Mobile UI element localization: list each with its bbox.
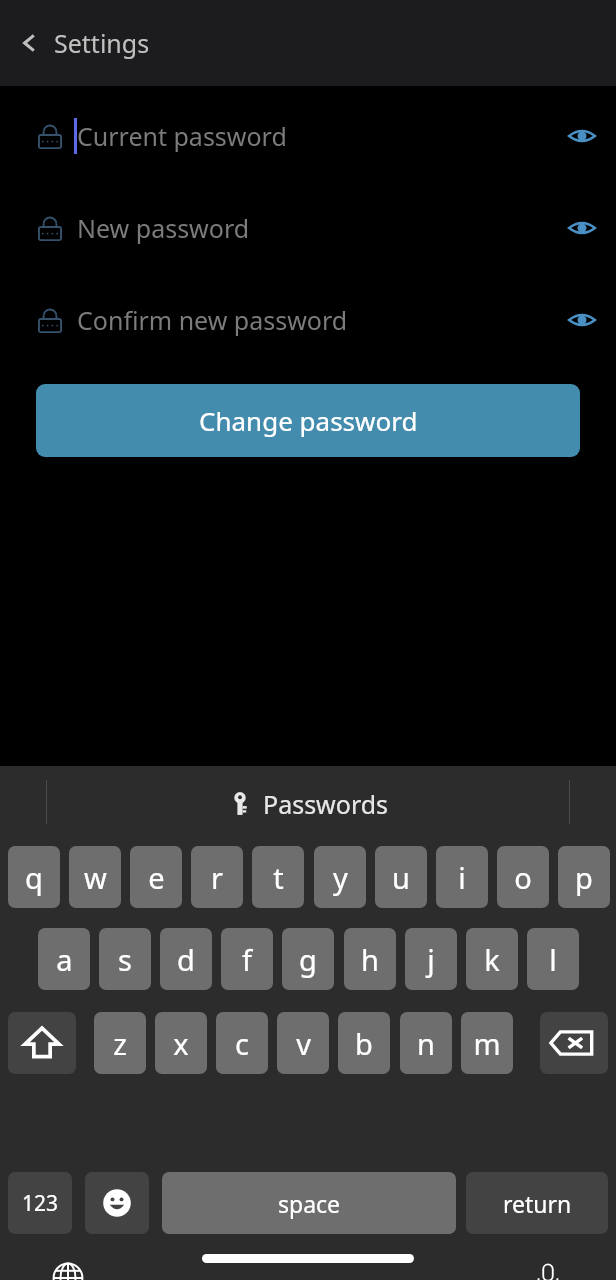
staticText: r xyxy=(211,858,223,897)
button[interactable]: j xyxy=(405,928,457,990)
staticText: c xyxy=(235,1024,249,1063)
staticText: Current password xyxy=(77,119,287,153)
button[interactable]: Show password xyxy=(558,296,606,344)
button[interactable]: a xyxy=(38,928,90,990)
button[interactable]: u xyxy=(375,846,427,908)
staticText: space xyxy=(278,1188,341,1219)
button[interactable]: Switch keyboard xyxy=(44,1254,92,1280)
button[interactable]: e xyxy=(130,846,182,908)
staticText: u xyxy=(392,858,410,897)
button[interactable]: Dictation xyxy=(524,1254,572,1280)
button[interactable]: Show password xyxy=(558,112,606,160)
button[interactable]: w xyxy=(69,846,121,908)
button[interactable]: h xyxy=(344,928,396,990)
staticText: w xyxy=(84,858,107,897)
button[interactable]: k xyxy=(466,928,518,990)
staticText: l xyxy=(549,940,557,979)
staticText: h xyxy=(361,940,379,979)
staticText: z xyxy=(113,1024,127,1063)
button[interactable]: t xyxy=(252,846,304,908)
button[interactable]: return xyxy=(466,1172,608,1234)
button[interactable]: Current password xyxy=(0,110,616,162)
button[interactable]: New password xyxy=(0,202,616,254)
button[interactable]: Show password xyxy=(558,204,606,252)
staticText: b xyxy=(355,1024,373,1063)
button[interactable]: Shift xyxy=(8,1012,76,1074)
button[interactable]: x xyxy=(155,1012,207,1074)
button[interactable]: y xyxy=(314,846,366,908)
button[interactable]: q xyxy=(8,846,60,908)
staticText: q xyxy=(25,858,43,897)
button[interactable]: 123 xyxy=(8,1172,72,1234)
staticText: o xyxy=(514,858,532,897)
staticText: x xyxy=(173,1024,189,1063)
button[interactable]: b xyxy=(338,1012,390,1074)
button[interactable]: z xyxy=(94,1012,146,1074)
button[interactable]: o xyxy=(497,846,549,908)
staticText: j xyxy=(427,940,435,979)
staticText: y xyxy=(333,858,348,897)
button[interactable]: d xyxy=(160,928,212,990)
button[interactable]: r xyxy=(191,846,243,908)
staticText: p xyxy=(575,858,593,897)
staticText: Settings xyxy=(54,26,150,60)
button[interactable]: Backspace xyxy=(540,1012,608,1074)
staticText: i xyxy=(458,858,466,897)
staticText: s xyxy=(118,940,132,979)
staticText: n xyxy=(417,1024,435,1063)
button[interactable]: s xyxy=(99,928,151,990)
button[interactable]: g xyxy=(282,928,334,990)
staticText: g xyxy=(299,940,317,979)
staticText: 123 xyxy=(22,1189,59,1218)
staticText: return xyxy=(503,1188,572,1219)
button[interactable]: v xyxy=(277,1012,329,1074)
staticText: Passwords xyxy=(263,787,389,821)
button[interactable]: p xyxy=(558,846,610,908)
button[interactable]: n xyxy=(400,1012,452,1074)
button[interactable]: Emoji xyxy=(85,1172,149,1234)
staticText: t xyxy=(273,858,284,897)
button[interactable]: Passwords xyxy=(227,787,389,821)
staticText: v xyxy=(296,1024,311,1063)
button[interactable]: Confirm new password xyxy=(0,294,616,346)
staticText: f xyxy=(242,940,252,979)
staticText: m xyxy=(473,1024,501,1063)
button[interactable]: m xyxy=(461,1012,513,1074)
button[interactable]: c xyxy=(216,1012,268,1074)
staticText: New password xyxy=(77,211,250,245)
button[interactable]: space xyxy=(162,1172,456,1234)
other: Back xyxy=(14,27,46,59)
staticText: Change password xyxy=(199,403,418,438)
staticText: a xyxy=(56,940,73,979)
staticText: Confirm new password xyxy=(77,303,348,337)
button[interactable]: Back xyxy=(14,26,150,60)
button[interactable]: f xyxy=(221,928,273,990)
staticText: k xyxy=(484,940,500,979)
staticText: e xyxy=(148,858,165,897)
button[interactable]: l xyxy=(527,928,579,990)
button[interactable]: Change password xyxy=(36,384,580,457)
staticText: d xyxy=(177,940,195,979)
button[interactable]: i xyxy=(436,846,488,908)
